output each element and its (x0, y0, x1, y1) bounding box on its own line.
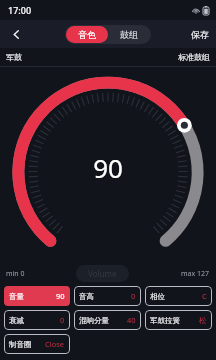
staticText: Volume (88, 268, 117, 279)
staticText: 保存 (191, 29, 209, 40)
button[interactable]: 保存 (184, 25, 216, 44)
staticText: 音色 (78, 29, 96, 40)
staticText: max 127 (181, 269, 210, 279)
staticText: 0 (131, 291, 136, 301)
staticText: 军鼓 (6, 52, 22, 62)
staticText: 标准鼓组 (178, 52, 210, 62)
staticText: 音高 (79, 292, 94, 301)
staticText: 松 (199, 316, 207, 325)
staticText: 40 (127, 315, 136, 325)
staticText: 制音圈 (9, 340, 32, 349)
button[interactable]: 相位 (145, 286, 212, 306)
staticText: 90 (56, 291, 65, 301)
button[interactable]: 音色 (66, 26, 108, 43)
staticText: Close (45, 339, 65, 349)
staticText: 17:00 (8, 4, 32, 16)
staticText: min 0 (6, 269, 25, 279)
staticText: 鼓组 (120, 29, 138, 40)
button[interactable]: 衰减 (4, 310, 70, 330)
staticText: 衰减 (9, 316, 24, 325)
staticText: 军鼓拉簧 (150, 316, 180, 325)
staticText: 0 (60, 315, 65, 325)
button[interactable]: Volume (76, 265, 129, 282)
button[interactable]: 音高 (74, 286, 141, 306)
button[interactable]: 鼓组 (108, 26, 150, 43)
button[interactable]: 音量 (4, 286, 70, 306)
button[interactable]: 制音圈 (4, 334, 70, 354)
button[interactable]: Back (4, 22, 28, 46)
staticText: C (202, 291, 207, 301)
staticText: 90 (93, 150, 123, 185)
button[interactable]: 混响分量 (74, 310, 141, 330)
staticText: 相位 (150, 292, 165, 301)
staticText: 混响分量 (79, 316, 109, 325)
staticText: 音量 (9, 292, 24, 301)
button[interactable]: 军鼓拉簧 (145, 310, 212, 330)
